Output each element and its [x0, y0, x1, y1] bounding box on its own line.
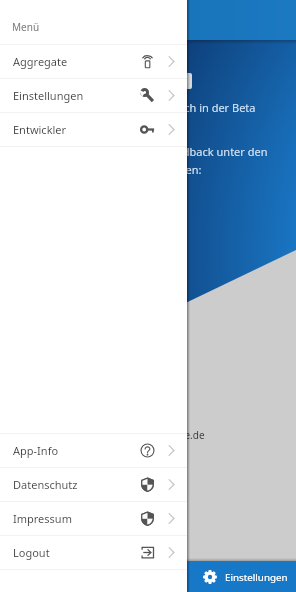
- staticText: Einstellungen: [13, 88, 84, 103]
- staticText: App-Info: [13, 443, 59, 458]
- button[interactable]: Aggregate: [0, 45, 187, 78]
- staticText: Menü: [12, 20, 40, 34]
- staticText: folgenden Adressen:: [95, 162, 202, 177]
- staticText: Bitte schicke uns jederzeit Feedback unt…: [28, 144, 268, 159]
- staticText: Einstellungen: [225, 571, 288, 584]
- button[interactable]: Einstellungen: [0, 79, 187, 112]
- button[interactable]: Impressum: [0, 502, 187, 535]
- staticText: beta@example.de: [120, 428, 205, 442]
- staticText: Du befindest dich aktuell auch in der Be…: [40, 100, 256, 115]
- button[interactable]: Datenschutz: [0, 468, 187, 501]
- staticText: Impressum: [13, 511, 72, 526]
- staticText: Datenschutz: [13, 477, 78, 492]
- button[interactable]: App-Info: [0, 434, 187, 467]
- staticText: Logout: [13, 545, 50, 560]
- button[interactable]: Einstellungen: [203, 570, 288, 584]
- staticText: Entwickler: [13, 122, 67, 137]
- button[interactable]: Logout: [0, 536, 187, 569]
- staticText: Aggregate: [13, 54, 68, 69]
- button[interactable]: Entwickler: [0, 113, 187, 146]
